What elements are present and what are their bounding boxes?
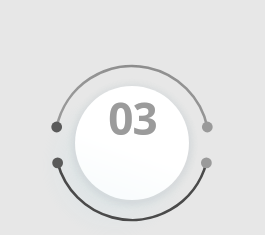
- button[interactable]: 03: [108, 88, 157, 148]
- button[interactable]: Step 03 progress indicator: [0, 0, 265, 235]
